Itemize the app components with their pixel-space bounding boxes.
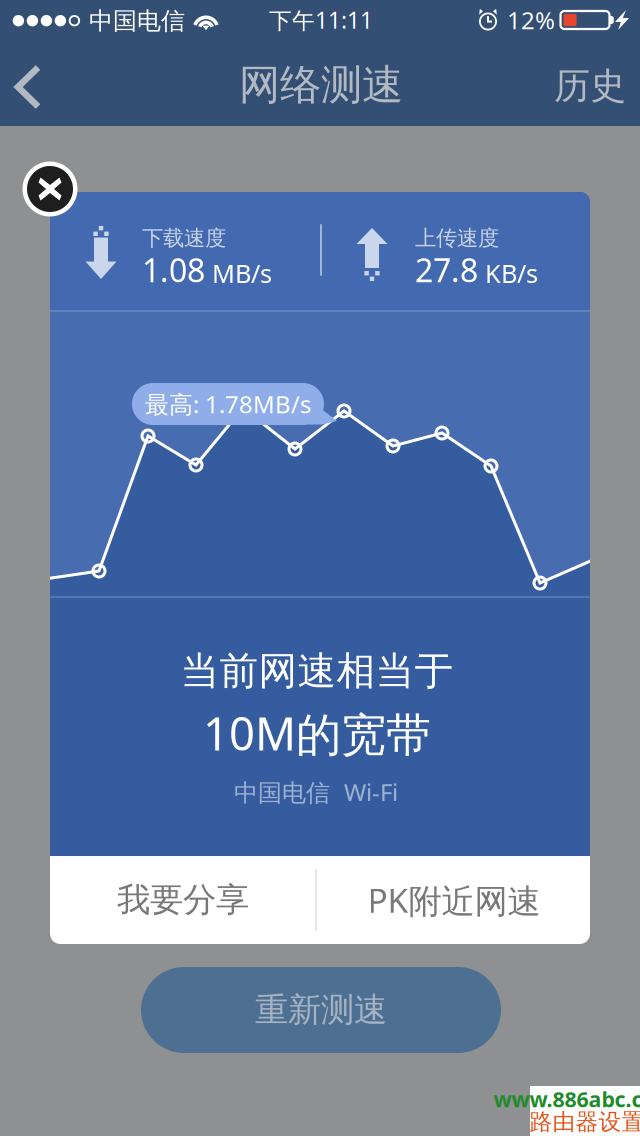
button[interactable]: 我要分享 (50, 856, 316, 944)
button[interactable]: 重新测速 (141, 967, 501, 1053)
staticText: 我要分享 (117, 879, 249, 920)
staticText: 12% (507, 4, 555, 36)
staticText: 10M的宽带 (203, 703, 431, 763)
staticText: 1.08 (142, 248, 205, 291)
button[interactable]: Back (0, 47, 64, 126)
button[interactable]: Close (21, 160, 79, 218)
staticText: PK附近网速 (367, 878, 540, 922)
staticText: www.886abc.com (493, 1085, 640, 1113)
staticText: 上传速度 (415, 225, 499, 251)
button[interactable]: PK附近网速 (318, 856, 590, 944)
staticText: 重新测速 (255, 989, 387, 1030)
staticText: 27.8 (415, 248, 478, 291)
staticText: 下载速度 (142, 225, 226, 251)
staticText: MB/s (212, 256, 272, 290)
staticText: 中国电信 Wi-Fi (234, 776, 398, 808)
staticText: 最高: 1.78MB/s (145, 388, 311, 420)
button[interactable]: 历史 (534, 44, 640, 128)
staticText: 中国电信 (89, 6, 185, 36)
staticText: 路由器设置 (529, 1108, 640, 1136)
staticText: 历史 (554, 64, 626, 108)
staticText: 下午11:11 (269, 5, 373, 35)
staticText: 网络测速 (239, 60, 403, 110)
staticText: 当前网速相当于 (180, 647, 453, 695)
staticText: KB/s (485, 256, 538, 290)
